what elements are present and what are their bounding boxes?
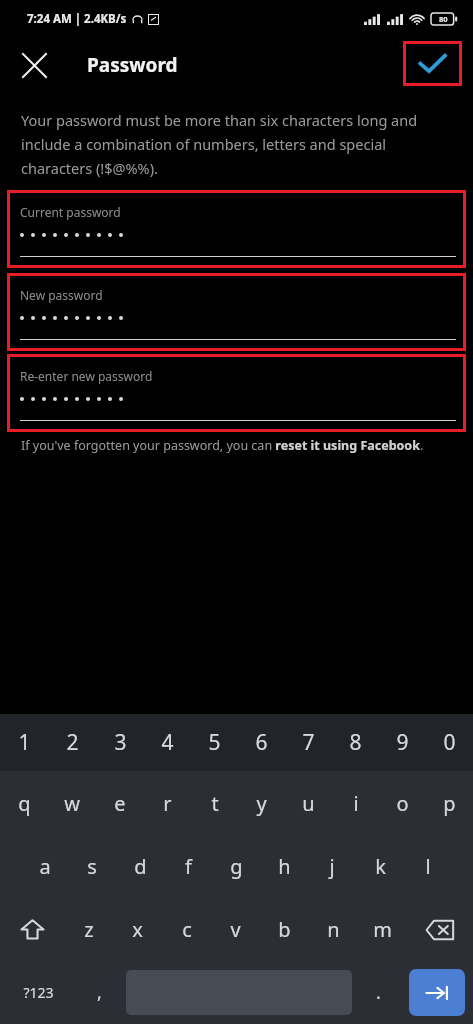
button[interactable]: Current password xyxy=(7,190,466,268)
button[interactable]: o xyxy=(379,771,426,835)
staticText: r xyxy=(163,790,172,817)
button[interactable]: 5 xyxy=(191,714,238,771)
staticText: Your password must be more than six char… xyxy=(21,110,449,178)
button[interactable]: m xyxy=(358,898,407,961)
staticText: a xyxy=(39,853,51,880)
button[interactable]: Enter xyxy=(409,969,465,1016)
button[interactable]: x xyxy=(113,898,162,961)
button[interactable]: e xyxy=(96,771,144,835)
staticText: x xyxy=(132,916,143,943)
button[interactable]: . xyxy=(356,961,401,1024)
button[interactable]: Close xyxy=(12,43,56,87)
staticText: 2 xyxy=(66,728,79,757)
staticText: i xyxy=(353,790,359,817)
staticText: 7:24 AM | 2.4KB/s xyxy=(27,11,127,27)
button[interactable]: 3 xyxy=(96,714,144,771)
staticText: 8 xyxy=(349,728,362,757)
button[interactable]: 6 xyxy=(238,714,285,771)
staticText: Re-enter new password xyxy=(20,368,153,384)
button[interactable]: d xyxy=(116,835,164,898)
button[interactable]: s xyxy=(68,835,116,898)
button[interactable]: f xyxy=(164,835,212,898)
button[interactable]: 0 xyxy=(426,714,473,771)
button[interactable]: h xyxy=(260,835,308,898)
button[interactable]: Backspace xyxy=(407,898,473,961)
staticText: Current password xyxy=(20,204,121,220)
button[interactable]: w xyxy=(48,771,96,835)
staticText: l xyxy=(425,853,431,880)
staticText: 5 xyxy=(208,728,221,757)
staticText: v xyxy=(230,916,241,943)
staticText: New password xyxy=(20,287,103,303)
button[interactable]: Confirm xyxy=(403,41,462,86)
button[interactable]: v xyxy=(211,898,260,961)
staticText: y xyxy=(256,790,267,817)
button[interactable]: Re-enter new password xyxy=(7,354,466,432)
staticText: j xyxy=(329,853,335,880)
button[interactable]: i xyxy=(332,771,379,835)
staticText: d xyxy=(134,853,147,880)
button[interactable]: k xyxy=(356,835,404,898)
staticText: 7 xyxy=(302,728,315,757)
staticText: z xyxy=(84,916,94,943)
button[interactable]: l xyxy=(404,835,452,898)
button[interactable]: y xyxy=(238,771,285,835)
button[interactable]: z xyxy=(65,898,113,961)
staticText: s xyxy=(87,853,97,880)
staticText: t xyxy=(211,790,219,817)
staticText: u xyxy=(302,790,315,817)
staticText: 9 xyxy=(396,728,409,757)
staticText: k xyxy=(375,853,386,880)
staticText: e xyxy=(114,790,126,817)
staticText: ?123 xyxy=(23,983,54,1002)
staticText: 3 xyxy=(114,728,127,757)
staticText: h xyxy=(278,853,291,880)
staticText: 4 xyxy=(161,728,174,757)
staticText: Password xyxy=(87,52,178,78)
button[interactable]: ?123 xyxy=(0,961,77,1024)
button[interactable]: j xyxy=(308,835,356,898)
staticText: n xyxy=(327,916,340,943)
staticText: m xyxy=(373,916,392,943)
staticText: b xyxy=(278,916,291,943)
button[interactable]: Shift xyxy=(0,898,65,961)
staticText: 1 xyxy=(18,728,31,757)
staticText: . xyxy=(376,980,381,1005)
button[interactable]: 7 xyxy=(285,714,332,771)
button[interactable]: , xyxy=(77,961,122,1024)
staticText: 0 xyxy=(443,728,456,757)
staticText: , xyxy=(97,980,102,1005)
button[interactable]: 9 xyxy=(379,714,426,771)
staticText: c xyxy=(182,916,192,943)
button[interactable]: q xyxy=(0,771,48,835)
button[interactable]: p xyxy=(426,771,473,835)
staticText: o xyxy=(396,790,409,817)
button[interactable]: b xyxy=(260,898,309,961)
button[interactable]: 8 xyxy=(332,714,379,771)
staticText: If you've forgotten your password, you c… xyxy=(21,437,424,454)
button[interactable]: n xyxy=(309,898,358,961)
staticText: g xyxy=(230,853,243,880)
staticText: q xyxy=(18,790,31,817)
staticText: 80 xyxy=(439,14,448,24)
button[interactable]: u xyxy=(285,771,332,835)
button[interactable]: 4 xyxy=(144,714,191,771)
button[interactable]: New password xyxy=(7,273,466,351)
staticText: 6 xyxy=(255,728,268,757)
button[interactable]: r xyxy=(144,771,191,835)
button[interactable]: t xyxy=(191,771,238,835)
button[interactable]: a xyxy=(21,835,68,898)
button[interactable]: c xyxy=(162,898,211,961)
button[interactable]: 1 xyxy=(0,714,48,771)
staticText: f xyxy=(185,853,192,880)
staticText: p xyxy=(443,790,456,817)
button[interactable]: g xyxy=(212,835,260,898)
button[interactable]: 2 xyxy=(48,714,96,771)
staticText: w xyxy=(64,790,80,817)
